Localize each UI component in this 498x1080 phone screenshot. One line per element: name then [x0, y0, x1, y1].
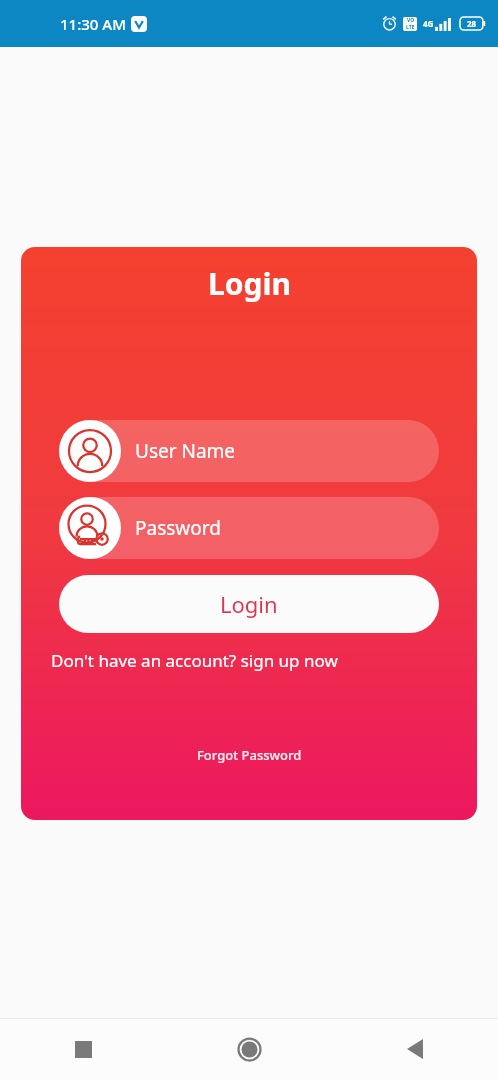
staticText: 4G: [423, 18, 434, 29]
staticText: 28: [467, 18, 477, 29]
button[interactable]: Recent apps: [0, 1018, 166, 1080]
button[interactable]: Back: [332, 1018, 498, 1080]
staticText: Don't have an account? sign up now: [51, 649, 338, 672]
staticText: User Name: [135, 438, 236, 464]
button[interactable]: Password: [59, 497, 439, 559]
staticText: Password: [135, 515, 221, 541]
staticText: Forgot Password: [197, 746, 302, 764]
staticText: VO: [407, 17, 415, 24]
button[interactable]: Forgot Password: [21, 746, 477, 764]
staticText: 11:30 AM: [60, 14, 126, 34]
button[interactable]: Don't have an account? sign up now: [51, 649, 447, 672]
staticText: Login: [208, 263, 291, 304]
button[interactable]: User Name: [59, 420, 439, 482]
staticText: Login: [220, 589, 278, 619]
staticText: LTE: [406, 24, 415, 31]
button[interactable]: Login: [59, 575, 439, 633]
button[interactable]: Home: [166, 1018, 332, 1080]
